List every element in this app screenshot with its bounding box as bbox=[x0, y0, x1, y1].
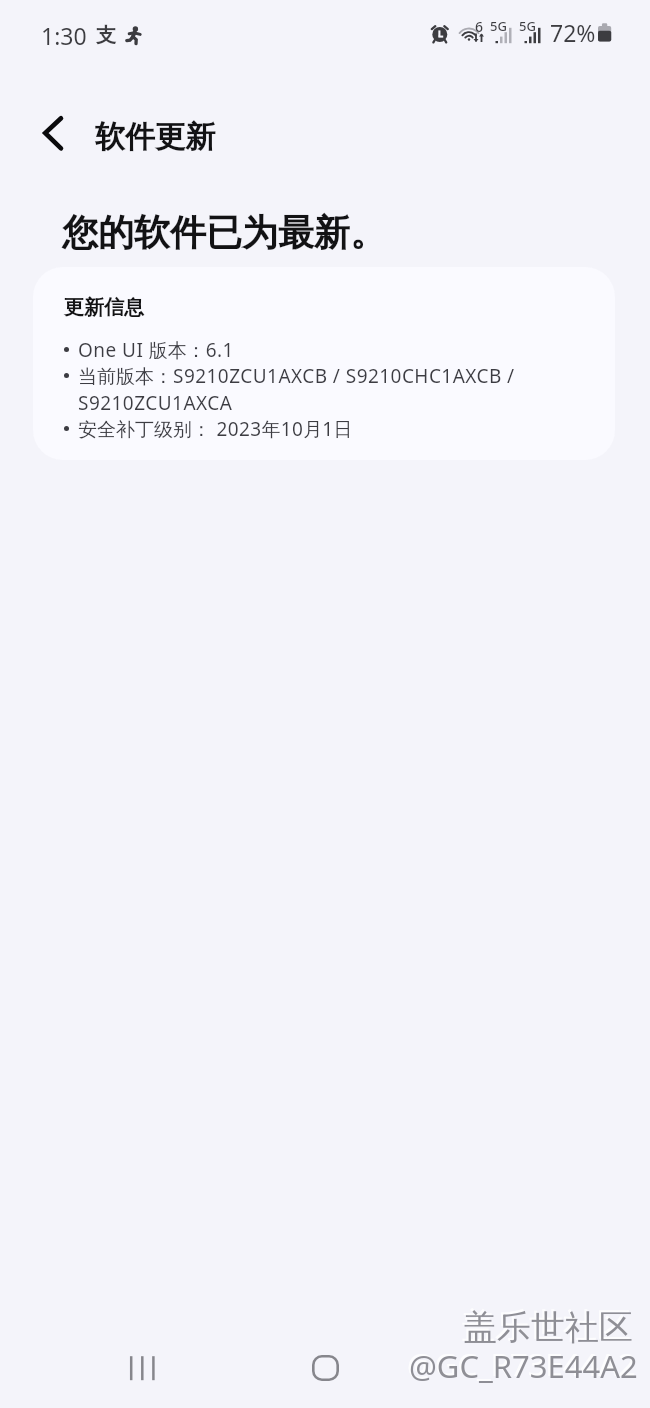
staticText: @GC_R73E44A2 bbox=[409, 1345, 638, 1387]
staticText: 5G bbox=[490, 17, 507, 35]
button[interactable]: Home bbox=[295, 1343, 355, 1393]
staticText: 软件更新 bbox=[95, 118, 215, 156]
button[interactable]: Back bbox=[495, 1343, 555, 1393]
staticText: 1:30 bbox=[41, 20, 87, 51]
staticText: 72% bbox=[550, 17, 596, 48]
staticText: One UI 版本：6.1 bbox=[78, 337, 234, 363]
button[interactable]: Back bbox=[23, 103, 83, 163]
staticText: @GC_R73E44A2 bbox=[407, 1343, 636, 1385]
staticText: 盖乐世社区 bbox=[463, 1306, 633, 1349]
button[interactable]: Recents bbox=[112, 1344, 172, 1392]
staticText: 5G bbox=[519, 17, 536, 35]
staticText: 安全补丁级别： 2023年10月1日 bbox=[78, 416, 353, 442]
staticText: 盖乐世社区 bbox=[461, 1304, 631, 1347]
staticText: 更新信息 bbox=[64, 295, 144, 320]
staticText: 6 bbox=[475, 17, 484, 36]
staticText: 支 bbox=[96, 23, 116, 48]
staticText: 您的软件已为最新。 bbox=[62, 210, 386, 255]
staticText: 当前版本：S9210ZCU1AXCB / S9210CHC1AXCB / S92… bbox=[78, 363, 564, 416]
button[interactable]: 更新信息 bbox=[33, 267, 615, 460]
